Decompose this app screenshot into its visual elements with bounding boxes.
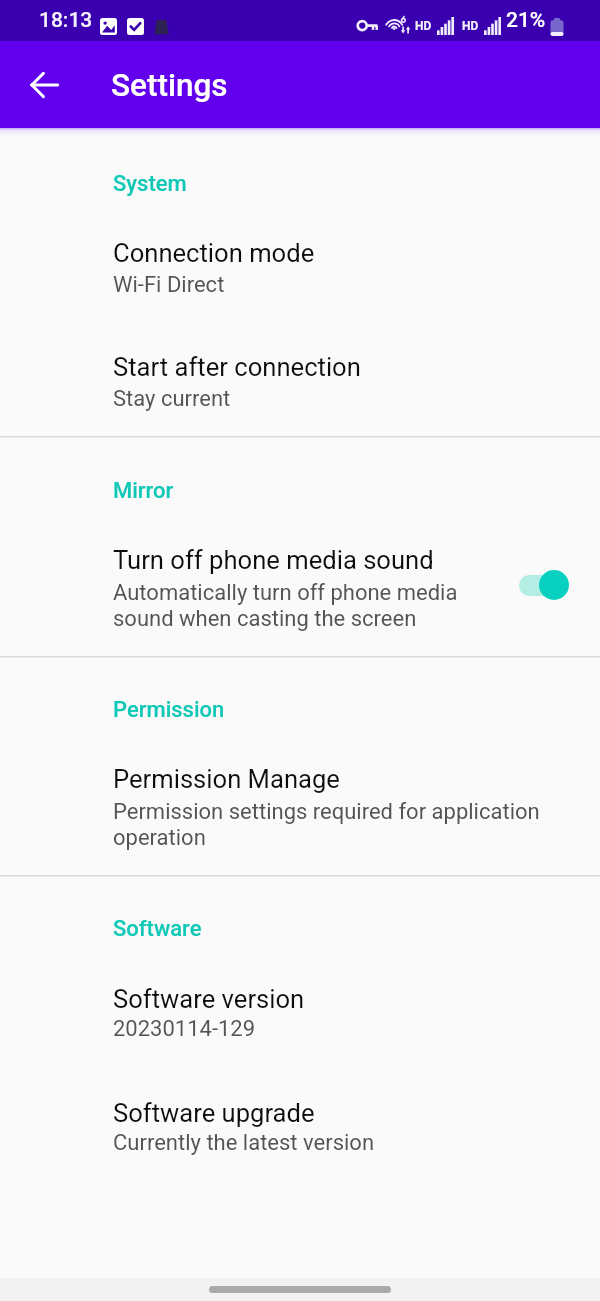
button[interactable]: Software upgrade (0, 1077, 600, 1148)
staticText: Wi-Fi Direct (113, 272, 225, 298)
staticText: Mirror (113, 478, 174, 504)
staticText: Software version (113, 984, 305, 1014)
button[interactable]: Permission Manage (0, 743, 600, 814)
staticText: Currently the latest version (113, 1130, 375, 1156)
button[interactable]: Connection mode (0, 217, 600, 288)
staticText: 20230114-129 (113, 1016, 256, 1042)
button[interactable]: Back (20, 61, 68, 109)
staticText: Software (113, 916, 202, 942)
staticText: Permission Manage (113, 764, 340, 794)
staticText: Settings (111, 67, 228, 104)
staticText: 18:13 (39, 8, 93, 33)
staticText: HD (415, 19, 432, 33)
staticText: HD (462, 19, 479, 33)
staticText: Stay current (113, 386, 231, 412)
button[interactable]: Software version (0, 963, 600, 1034)
staticText: Start after connection (113, 352, 361, 382)
staticText: Automatically turn off phone media sound… (113, 580, 483, 632)
staticText: Permission (113, 697, 225, 723)
staticText: Permission settings required for applica… (113, 799, 570, 851)
button[interactable]: Turn off phone media sound (509, 560, 581, 622)
button[interactable]: Turn off phone media sound (0, 524, 600, 595)
staticText: System (113, 171, 187, 197)
button[interactable]: Start after connection (0, 331, 600, 402)
staticText: Turn off phone media sound (113, 545, 434, 575)
staticText: Software upgrade (113, 1098, 315, 1128)
staticText: Connection mode (113, 238, 315, 268)
staticText: 21% (506, 8, 546, 33)
